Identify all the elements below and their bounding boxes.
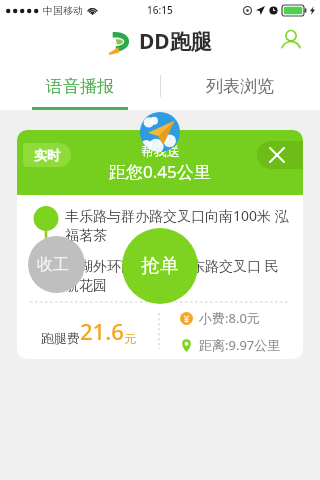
staticText: 收工	[37, 255, 77, 275]
staticText: 距您0.45公里	[109, 160, 211, 183]
staticText: 帮我送	[141, 143, 180, 159]
staticText: DD跑腿	[139, 27, 212, 56]
button[interactable]: Profile	[276, 26, 306, 56]
staticText: 列表浏览	[206, 76, 274, 97]
button[interactable]: 收工	[28, 236, 85, 293]
staticText: 丰乐路与群办路交叉口向南100米 泓福茗茶	[65, 206, 289, 244]
button[interactable]: Close	[257, 141, 303, 169]
staticText: 元	[124, 331, 136, 346]
staticText: 跑腿费	[41, 330, 80, 346]
staticText: 语音播报	[46, 76, 114, 97]
staticText: 距离:9.97公里	[199, 336, 281, 354]
staticText: 实时	[34, 147, 60, 163]
button[interactable]: 语音播报	[0, 62, 160, 110]
staticText: 龙湖外环南路与农业东路交叉口 民航花园	[65, 256, 289, 294]
staticText: 抢单	[141, 254, 179, 278]
button[interactable]: 列表浏览	[160, 62, 320, 110]
staticText: 中国移动	[43, 4, 83, 17]
button[interactable]: 抢单	[122, 228, 198, 304]
staticText: 小费:8.0元	[199, 309, 260, 327]
staticText: 16:15	[147, 3, 173, 17]
staticText: 21.6	[80, 316, 124, 346]
button[interactable]: 帮我送	[17, 130, 303, 359]
